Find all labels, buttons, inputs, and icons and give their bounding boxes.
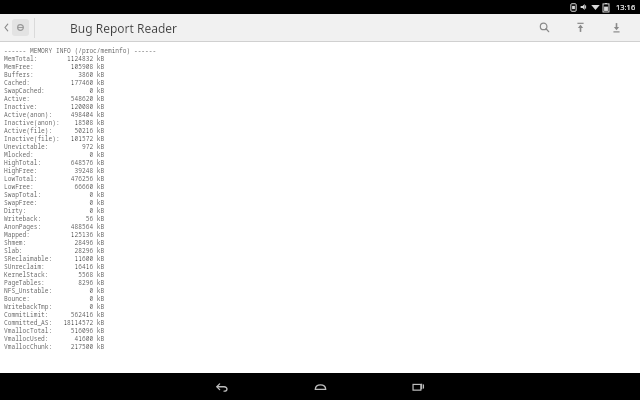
staticText: Inactive: 120080 kB (4, 102, 105, 110)
staticText: SwapTotal: 0 kB (4, 190, 105, 198)
button[interactable]: Back (200, 373, 244, 400)
staticText: PageTables: 8296 kB (4, 278, 105, 286)
staticText: HighFree: 39248 kB (4, 166, 105, 174)
staticText: SReclaimable: 11600 kB (4, 254, 105, 262)
staticText: Committed_AS: 18114572 kB (4, 318, 105, 326)
button[interactable]: Navigate up (0, 14, 64, 41)
staticText: Active(file): 50216 kB (4, 126, 105, 134)
staticText: Mapped: 125136 kB (4, 230, 105, 238)
staticText: MemTotal: 1124832 kB (4, 54, 105, 62)
staticText: AnonPages: 488564 kB (4, 222, 105, 230)
staticText: Writeback: 56 kB (4, 214, 105, 222)
staticText: Dirty: 0 kB (4, 206, 105, 214)
staticText: Inactive(file): 101572 kB (4, 134, 105, 142)
staticText: Bug Report Reader (70, 20, 178, 36)
staticText: LowFree: 66660 kB (4, 182, 105, 190)
staticText: ------ MEMORY INFO (/proc/meminfo) -----… (4, 46, 157, 54)
button[interactable]: Download (603, 14, 629, 41)
button[interactable]: Search (531, 14, 557, 41)
staticText: SUnreclaim: 16416 kB (4, 262, 105, 270)
staticText: Unevictable: 972 kB (4, 142, 105, 150)
staticText: CommitLimit: 562416 kB (4, 310, 105, 318)
staticText: Active(anon): 498404 kB (4, 110, 105, 118)
staticText: WritebackTmp: 0 kB (4, 302, 105, 310)
staticText: HighTotal: 648576 kB (4, 158, 105, 166)
staticText: Bounce: 0 kB (4, 294, 105, 302)
staticText: Shmem: 28496 kB (4, 238, 105, 246)
button[interactable]: Upload (567, 14, 593, 41)
staticText: 13:16 (616, 2, 636, 12)
staticText: Mlocked: 0 kB (4, 150, 105, 158)
staticText: VmallocTotal: 516096 kB (4, 326, 105, 334)
staticText: Buffers: 3860 kB (4, 70, 105, 78)
staticText: Active: 548620 kB (4, 94, 105, 102)
staticText: Inactive(anon): 18508 kB (4, 118, 105, 126)
staticText: SwapCached: 0 kB (4, 86, 105, 94)
button[interactable]: Recents (396, 373, 440, 400)
staticText: VmallocChunk: 217500 kB (4, 342, 105, 350)
staticText: SwapFree: 0 kB (4, 198, 105, 206)
staticText: NFS_Unstable: 0 kB (4, 286, 105, 294)
staticText: VmallocUsed: 41600 kB (4, 334, 105, 342)
staticText: KernelStack: 5568 kB (4, 270, 105, 278)
staticText: LowTotal: 476256 kB (4, 174, 105, 182)
button[interactable]: Home (298, 373, 342, 400)
staticText: Cached: 177460 kB (4, 78, 105, 86)
staticText: MemFree: 105908 kB (4, 62, 105, 70)
staticText: Slab: 28296 kB (4, 246, 105, 254)
